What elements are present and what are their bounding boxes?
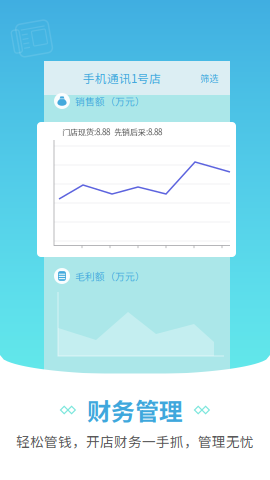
- staticText: 轻松管钱，开店财务一手抓，管理无忧: [16, 431, 254, 451]
- button[interactable]: 手机通讯1号店: [44, 61, 230, 95]
- staticText: 毛利额（万元）: [75, 269, 145, 283]
- staticText: 财务管理: [87, 393, 183, 427]
- staticText: 销售额（万元）: [75, 94, 145, 108]
- staticText: 门店现货:8.88 先销后采:8.88: [62, 126, 162, 138]
- staticText: 手机通讯1号店: [83, 70, 161, 86]
- staticText: 筛选: [200, 71, 218, 85]
